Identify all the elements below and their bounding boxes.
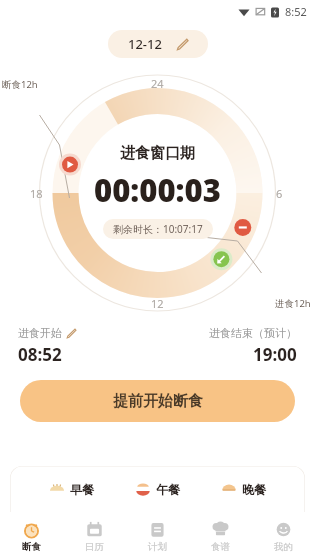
staticText: 08:52 — [18, 343, 62, 366]
staticText: 午餐 — [156, 482, 180, 497]
staticText: 进食开始 — [18, 326, 62, 340]
button[interactable]: 食谱 — [203, 517, 238, 556]
button[interactable]: 12-12 — [108, 30, 208, 58]
other: Edit date — [176, 38, 188, 50]
other: Edit start time — [66, 328, 76, 338]
staticText: 断食12h — [2, 78, 38, 91]
staticText: 食谱 — [211, 541, 230, 553]
staticText: 8:52 — [285, 4, 307, 19]
staticText: 晚餐 — [242, 482, 266, 497]
button[interactable]: 进食开始 — [18, 326, 76, 340]
button[interactable]: 断食 — [14, 517, 49, 556]
staticText: 计划 — [148, 541, 167, 553]
staticText: 断食 — [22, 541, 41, 553]
staticText: 提前开始断食 — [113, 392, 203, 411]
staticText: 12 — [151, 296, 164, 311]
button[interactable]: 计划 — [140, 517, 175, 556]
staticText: 进食12h — [275, 297, 311, 310]
button[interactable]: 提前开始断食 — [20, 380, 295, 422]
staticText: 24 — [151, 76, 164, 91]
staticText: 剩余时长：10:07:17 — [113, 222, 203, 236]
button[interactable]: 晚餐 — [221, 481, 266, 497]
staticText: 日历 — [85, 541, 104, 553]
button[interactable]: 我的 — [266, 517, 301, 556]
staticText: 我的 — [274, 541, 293, 553]
staticText: 19:00 — [253, 343, 297, 366]
staticText: 18 — [30, 186, 43, 201]
staticText: 12-12 — [128, 35, 162, 53]
staticText: 进食结束（预计） — [209, 326, 297, 340]
staticText: 00:00:03 — [94, 169, 221, 211]
staticText: 进食窗口期 — [120, 144, 195, 163]
button[interactable]: 日历 — [77, 517, 112, 556]
button[interactable]: 午餐 — [135, 481, 180, 497]
staticText: 6 — [276, 186, 283, 201]
button[interactable]: 早餐 — [49, 481, 94, 497]
staticText: 早餐 — [70, 482, 94, 497]
